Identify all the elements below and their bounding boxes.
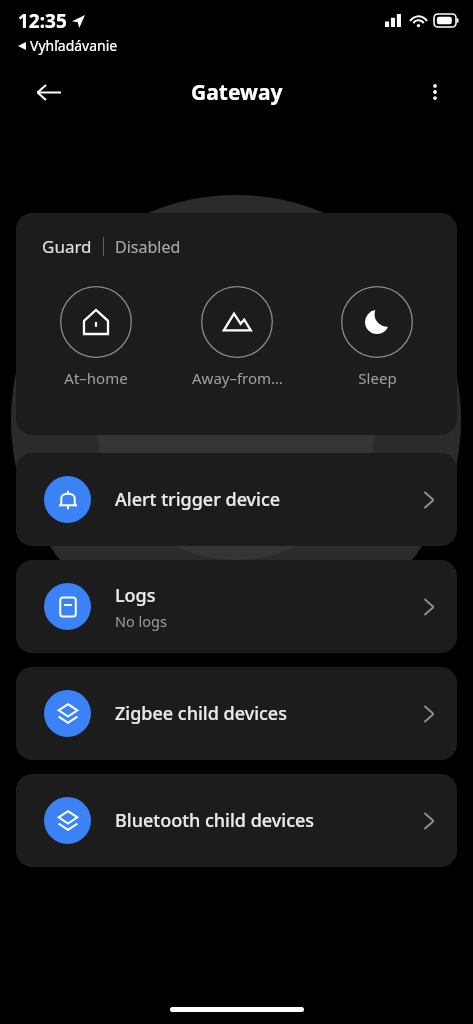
button[interactable]: At–home (36, 286, 156, 388)
staticText: Alert trigger device (115, 487, 281, 512)
button[interactable]: Away–from… (177, 286, 297, 388)
staticText: No logs (115, 611, 167, 631)
staticText: At–home (64, 368, 128, 388)
staticText: Disabled (115, 236, 181, 258)
staticText: Sleep (358, 368, 397, 388)
button[interactable]: Alert trigger device (16, 453, 457, 546)
staticText: 12:35 (18, 8, 67, 34)
staticText: Guard (42, 235, 92, 258)
staticText: Logs (115, 583, 156, 608)
button[interactable]: Logs (16, 560, 457, 653)
staticText: Away–from… (192, 368, 283, 388)
staticText: Zigbee child devices (115, 701, 287, 726)
staticText: Gateway (191, 78, 283, 107)
button[interactable]: Back (26, 70, 70, 114)
button[interactable]: Sleep (317, 286, 437, 388)
staticText: Bluetooth child devices (115, 808, 315, 833)
button[interactable]: More options (414, 71, 456, 113)
staticText: Vyhľadávanie (30, 36, 118, 55)
button[interactable]: Bluetooth child devices (16, 774, 457, 867)
button[interactable]: Zigbee child devices (16, 667, 457, 760)
